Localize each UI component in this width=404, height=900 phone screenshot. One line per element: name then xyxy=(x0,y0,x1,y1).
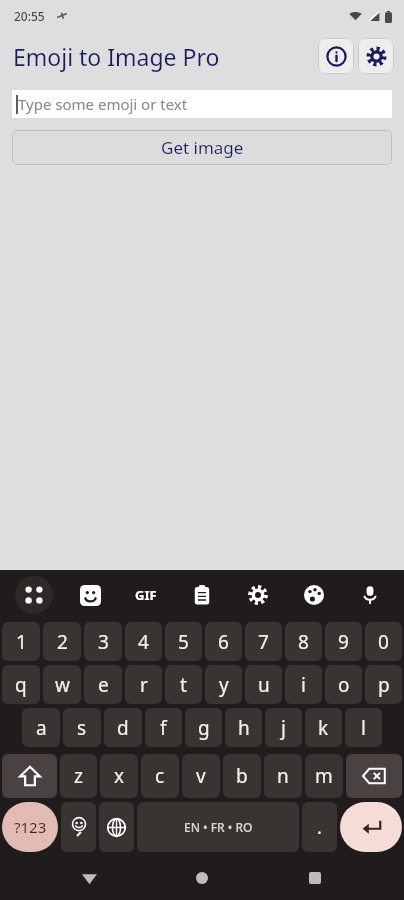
button[interactable]: e xyxy=(84,665,122,704)
button[interactable]: Settings xyxy=(230,570,286,620)
button[interactable]: 8 xyxy=(285,622,322,661)
staticText: j xyxy=(281,715,286,741)
staticText: l xyxy=(361,715,366,741)
staticText: z xyxy=(74,763,83,789)
button[interactable]: 4 xyxy=(125,622,162,661)
button[interactable]: 6 xyxy=(205,622,242,661)
button[interactable]: n xyxy=(264,754,302,798)
staticText: 3 xyxy=(98,629,109,655)
button[interactable]: b xyxy=(223,754,261,798)
staticText: t xyxy=(180,672,187,698)
button[interactable]: k xyxy=(305,708,342,747)
staticText: 7 xyxy=(258,629,269,655)
staticText: i xyxy=(301,672,306,698)
button[interactable]: . xyxy=(302,802,337,852)
staticText: f xyxy=(160,715,167,741)
button[interactable]: c xyxy=(141,754,179,798)
button[interactable]: Backspace xyxy=(346,754,402,798)
staticText: a xyxy=(36,715,47,741)
button[interactable]: 2 xyxy=(43,622,81,661)
button[interactable]: q xyxy=(2,665,40,704)
staticText: 6 xyxy=(218,629,229,655)
button[interactable]: Change language xyxy=(99,802,134,852)
staticText: h xyxy=(238,715,250,741)
button[interactable]: y xyxy=(205,665,242,704)
button[interactable]: h xyxy=(225,708,262,747)
staticText: EN • FR • RO xyxy=(184,819,253,835)
staticText: w xyxy=(55,672,70,698)
button[interactable]: w xyxy=(43,665,81,704)
button[interactable]: f xyxy=(145,708,182,747)
staticText: g xyxy=(198,715,210,741)
button[interactable]: x xyxy=(100,754,138,798)
button[interactable]: p xyxy=(365,665,402,704)
staticText: p xyxy=(378,672,390,698)
button[interactable]: o xyxy=(325,665,362,704)
button[interactable]: Recents xyxy=(291,856,339,900)
button[interactable]: i xyxy=(285,665,322,704)
staticText: s xyxy=(77,715,87,741)
staticText: Get image xyxy=(161,136,244,159)
staticText: . xyxy=(317,815,322,840)
staticText: GIF xyxy=(135,586,157,604)
staticText: r xyxy=(140,672,148,698)
staticText: n xyxy=(277,763,289,789)
button[interactable]: 9 xyxy=(325,622,362,661)
staticText: v xyxy=(196,763,206,789)
button[interactable]: Apps xyxy=(6,570,62,620)
button[interactable]: Type some emoji or text xyxy=(12,90,392,118)
button[interactable]: 7 xyxy=(245,622,282,661)
staticText: 2 xyxy=(57,629,68,655)
staticText: q xyxy=(15,672,27,698)
staticText: Emoji to Image Pro xyxy=(13,41,220,72)
staticText: ?123 xyxy=(14,817,47,837)
button[interactable]: j xyxy=(265,708,302,747)
button[interactable]: Enter xyxy=(340,802,402,852)
button[interactable]: r xyxy=(125,665,162,704)
button[interactable]: Shift xyxy=(2,754,57,798)
button[interactable]: Get image xyxy=(12,130,392,165)
button[interactable]: Stickers xyxy=(62,570,118,620)
button[interactable]: Emoji xyxy=(61,802,96,852)
staticText: 4 xyxy=(138,629,149,655)
button[interactable]: u xyxy=(245,665,282,704)
button[interactable]: Home xyxy=(178,856,226,900)
button[interactable]: d xyxy=(104,708,142,747)
staticText: 9 xyxy=(338,629,349,655)
staticText: 8 xyxy=(298,629,309,655)
button[interactable]: a xyxy=(22,708,60,747)
button[interactable]: v xyxy=(182,754,220,798)
staticText: k xyxy=(318,715,329,741)
staticText: m xyxy=(315,763,333,789)
button[interactable]: Settings xyxy=(358,38,394,74)
button[interactable]: GIF xyxy=(118,570,174,620)
staticText: d xyxy=(117,715,129,741)
button[interactable]: g xyxy=(185,708,222,747)
button[interactable]: Info xyxy=(318,38,354,74)
button[interactable]: ?123 xyxy=(2,802,58,852)
button[interactable]: 5 xyxy=(165,622,202,661)
button[interactable]: 3 xyxy=(84,622,122,661)
staticText: c xyxy=(155,763,165,789)
staticText: 5 xyxy=(178,629,189,655)
button[interactable]: m xyxy=(305,754,343,798)
staticText: x xyxy=(114,763,125,789)
staticText: Type some emoji or text xyxy=(18,94,188,114)
button[interactable]: z xyxy=(60,754,97,798)
staticText: 20:55 xyxy=(14,8,45,24)
button[interactable]: Voice input xyxy=(342,570,398,620)
staticText: b xyxy=(236,763,248,789)
button[interactable]: Clipboard xyxy=(174,570,230,620)
staticText: 0 xyxy=(378,629,389,655)
button[interactable]: l xyxy=(345,708,382,747)
button[interactable]: 0 xyxy=(365,622,402,661)
staticText: o xyxy=(338,672,350,698)
staticText: u xyxy=(258,672,270,698)
button[interactable]: EN • FR • RO xyxy=(137,802,299,852)
button[interactable]: Theme xyxy=(286,570,342,620)
button[interactable]: s xyxy=(63,708,101,747)
button[interactable]: 1 xyxy=(2,622,40,661)
button[interactable]: t xyxy=(165,665,202,704)
staticText: e xyxy=(98,672,109,698)
button[interactable]: Back xyxy=(65,856,113,900)
